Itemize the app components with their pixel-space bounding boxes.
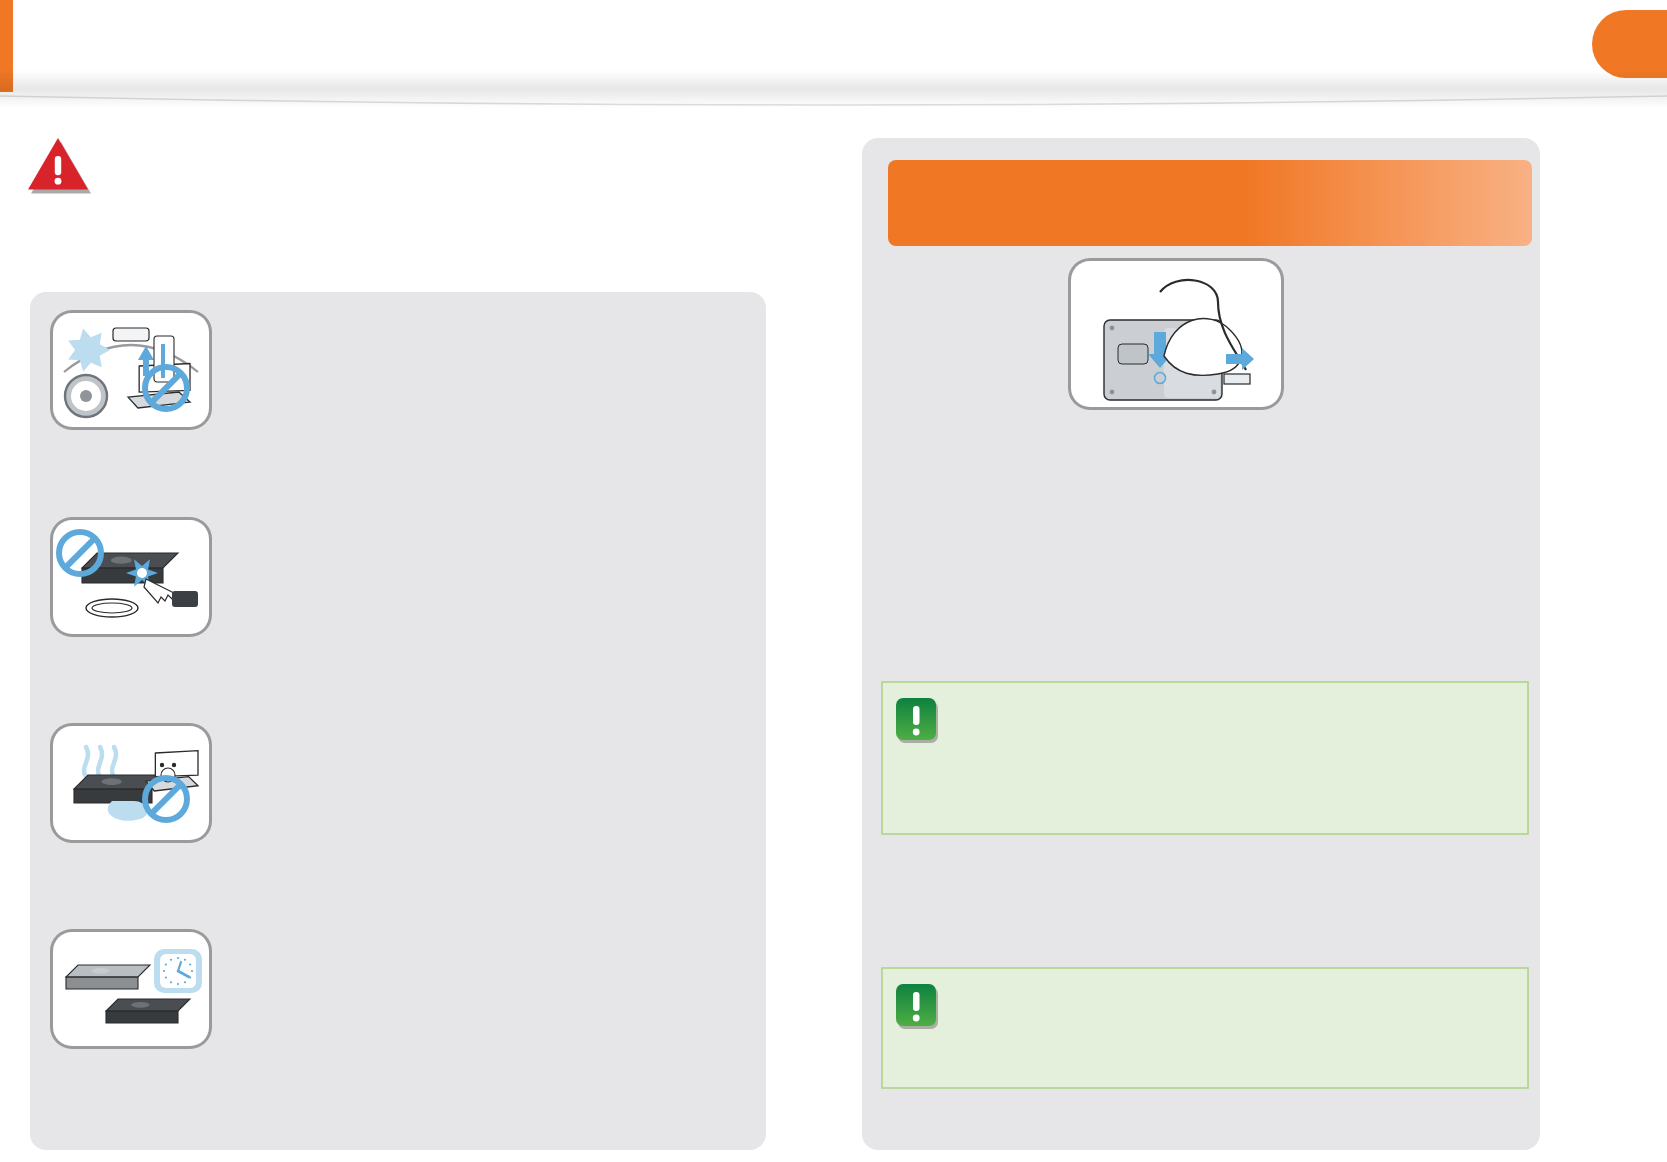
button[interactable]: Chapter tab xyxy=(1592,10,1667,78)
button[interactable]: Section marker xyxy=(0,0,13,92)
